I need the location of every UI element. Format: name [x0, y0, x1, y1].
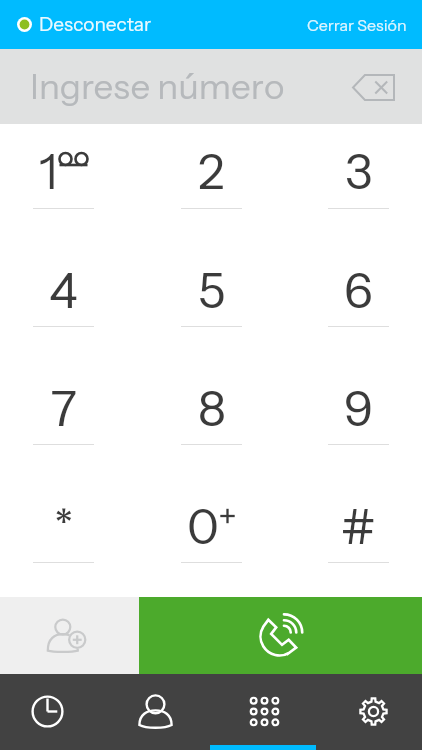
- staticText: 4: [49, 261, 78, 320]
- button[interactable]: 0: [181, 479, 242, 597]
- staticText: 9: [344, 379, 374, 438]
- staticText: 5: [198, 261, 226, 320]
- button[interactable]: 9: [328, 361, 389, 479]
- button[interactable]: 6: [328, 243, 389, 361]
- button[interactable]: Teclado: [210, 674, 316, 750]
- staticText: 2: [198, 142, 225, 201]
- staticText: *: [54, 497, 74, 556]
- button[interactable]: Ajustes: [316, 674, 422, 750]
- button[interactable]: Borrar: [342, 61, 422, 113]
- button[interactable]: 5: [181, 243, 242, 361]
- button[interactable]: 8: [181, 361, 242, 479]
- button[interactable]: Desconectar: [0, 0, 164, 49]
- staticText: 3: [345, 142, 373, 201]
- button[interactable]: Agregar contacto: [0, 597, 139, 674]
- staticText: 7: [51, 379, 77, 438]
- button[interactable]: 2: [181, 124, 242, 243]
- button[interactable]: 1: [33, 124, 94, 243]
- button[interactable]: #: [328, 479, 389, 597]
- button[interactable]: Recientes: [0, 674, 105, 750]
- button[interactable]: 7: [33, 361, 94, 479]
- button[interactable]: Llamar: [139, 597, 422, 674]
- button[interactable]: 3: [328, 124, 389, 243]
- staticText: #: [341, 497, 376, 556]
- staticText: 1: [39, 142, 58, 201]
- button[interactable]: Cerrar Sesión: [307, 0, 422, 49]
- staticText: 6: [344, 261, 373, 320]
- staticText: Ingrese número: [30, 65, 285, 108]
- staticText: 8: [198, 379, 226, 438]
- button[interactable]: 4: [33, 243, 94, 361]
- staticText: Desconectar: [39, 13, 152, 36]
- staticText: Cerrar Sesión: [307, 15, 407, 35]
- button[interactable]: *: [33, 479, 94, 597]
- button[interactable]: Contactos: [105, 674, 210, 750]
- staticText: 0: [187, 497, 219, 556]
